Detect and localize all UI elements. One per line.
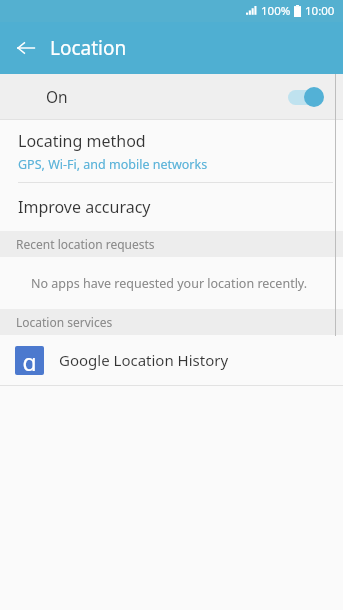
button[interactable]: Back — [8, 30, 44, 66]
staticText: 100% — [261, 3, 291, 19]
staticText: g — [22, 346, 37, 371]
button[interactable]: On — [0, 74, 343, 119]
staticText: Google Location History — [59, 350, 229, 370]
staticText: No apps have requested your location rec… — [31, 275, 308, 292]
staticText: GPS, Wi-Fi, and mobile networks — [18, 156, 208, 173]
staticText: Locating method — [18, 130, 146, 152]
staticText: Improve accuracy — [18, 196, 151, 218]
staticText: Location — [50, 35, 127, 61]
button[interactable]: Improve accuracy — [0, 183, 343, 231]
button[interactable]: g — [0, 335, 343, 385]
staticText: Location services — [16, 314, 113, 330]
staticText: 10:00 — [305, 3, 335, 19]
button[interactable]: Locating method — [0, 120, 343, 182]
staticText: Recent location requests — [16, 236, 155, 252]
staticText: On — [46, 86, 68, 107]
